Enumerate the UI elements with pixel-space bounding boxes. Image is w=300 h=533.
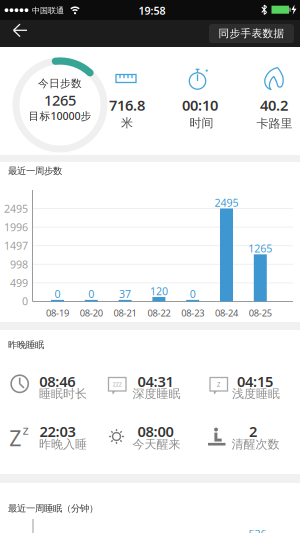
staticText: 08-22	[147, 307, 170, 319]
staticText: 526	[248, 526, 266, 533]
staticText: 睡眠时长	[39, 386, 87, 401]
staticText: 19:58	[138, 3, 165, 18]
staticText: 716.8	[109, 95, 145, 115]
staticText: 目标10000步	[28, 109, 91, 123]
staticText: 中国联通	[32, 6, 64, 15]
staticText: 08-19	[46, 307, 69, 319]
staticText: 昨晚入睡	[39, 437, 87, 452]
staticText: 最近一周睡眠（分钟）	[8, 503, 98, 514]
button[interactable]: Back	[1, 18, 37, 43]
staticText: 卡路里	[256, 116, 292, 131]
staticText: 40.2	[260, 95, 288, 115]
staticText: 浅度睡眠	[232, 386, 280, 401]
staticText: 04:31	[137, 372, 173, 391]
staticText: 最近一周步数	[8, 165, 62, 177]
staticText: 同步手表数据	[218, 27, 284, 40]
button[interactable]: 同步手表数据	[209, 24, 294, 43]
staticText: zzz	[113, 380, 122, 388]
staticText: 昨晚睡眠	[8, 339, 44, 351]
staticText: z	[217, 379, 221, 389]
staticText: 08-21	[114, 307, 137, 319]
staticText: 今天醒来	[132, 437, 180, 452]
staticText: 清醒次数	[231, 437, 279, 452]
staticText: 04:15	[237, 372, 273, 391]
staticText: 08-23	[181, 307, 204, 319]
staticText: Z	[9, 424, 21, 452]
staticText: 0	[190, 287, 196, 301]
staticText: 1265	[44, 90, 76, 110]
staticText: 米	[121, 116, 133, 130]
staticText: 2495	[214, 195, 238, 210]
staticText: 时间	[189, 116, 213, 130]
staticText: 499	[10, 276, 28, 290]
staticText: 998	[10, 257, 28, 271]
staticText: 08-25	[249, 307, 272, 319]
staticText: 1996	[4, 220, 28, 234]
staticText: 00:10	[182, 95, 218, 115]
staticText: 08-24	[215, 307, 238, 319]
staticText: 08:46	[39, 372, 75, 391]
staticText: 2	[249, 421, 257, 441]
staticText: 今日步数	[38, 77, 82, 90]
staticText: z	[22, 421, 28, 438]
staticText: 0	[22, 294, 28, 308]
staticText: 0	[88, 287, 94, 301]
staticText: 2495	[4, 201, 28, 216]
staticText: 37	[119, 287, 131, 301]
staticText: 1265	[248, 241, 272, 255]
staticText: 1497	[4, 239, 28, 253]
staticText: 深度睡眠	[132, 386, 180, 401]
staticText: 0	[54, 287, 60, 301]
staticText: 08:00	[137, 421, 173, 441]
staticText: 120	[150, 284, 168, 298]
staticText: 08-20	[80, 307, 103, 319]
staticText: 22:03	[39, 421, 75, 441]
